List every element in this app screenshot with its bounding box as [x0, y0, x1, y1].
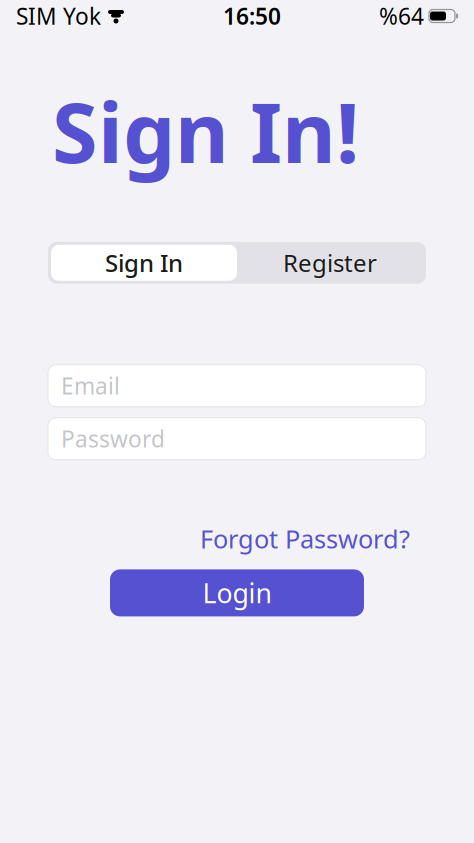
staticText: Forgot Password?	[200, 522, 410, 555]
staticText: Register	[283, 247, 377, 279]
button[interactable]: Register	[237, 245, 423, 281]
staticText: 16:50	[223, 1, 281, 31]
button[interactable]: Sign In	[51, 245, 237, 281]
staticText: SIM Yok	[16, 1, 101, 31]
staticText: Sign In!	[52, 76, 359, 186]
staticText: Password	[61, 424, 165, 454]
staticText: %64	[379, 1, 424, 31]
staticText: Sign In	[105, 247, 183, 279]
button[interactable]: Forgot Password?	[200, 522, 410, 555]
button[interactable]: Login	[110, 569, 364, 616]
staticText: Email	[61, 371, 120, 401]
staticText: Login	[202, 575, 271, 611]
